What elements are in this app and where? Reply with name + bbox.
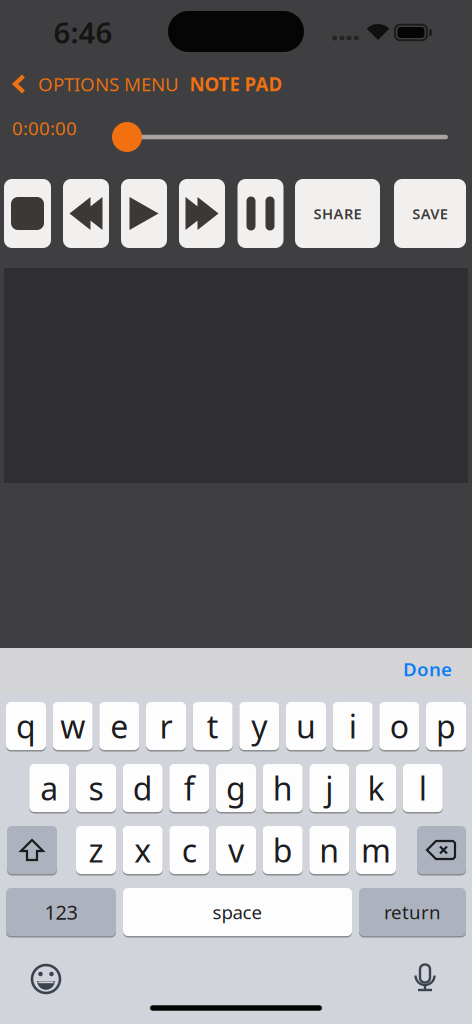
button[interactable]: n <box>309 825 349 875</box>
staticText: w <box>60 705 85 747</box>
staticText: x <box>134 829 151 871</box>
button[interactable]: q <box>6 701 46 751</box>
button[interactable]: b <box>263 825 303 875</box>
staticText: f <box>184 767 195 809</box>
button[interactable]: d <box>123 763 163 813</box>
staticText: u <box>296 705 316 747</box>
staticText: return <box>384 900 441 924</box>
button[interactable]: a <box>29 763 69 813</box>
staticText: l <box>419 767 427 809</box>
button[interactable]: space <box>123 887 352 937</box>
staticText: p <box>436 705 456 747</box>
button[interactable]: p <box>426 701 466 751</box>
staticText: q <box>16 705 36 747</box>
staticText: v <box>228 829 244 871</box>
button[interactable]: Done <box>392 647 462 691</box>
button[interactable]: m <box>356 825 396 875</box>
button[interactable]: g <box>216 763 256 813</box>
button[interactable]: Delete <box>417 825 466 875</box>
button[interactable]: z <box>76 825 116 875</box>
button[interactable]: Rewind <box>63 179 109 248</box>
button[interactable]: Dictation <box>413 962 437 991</box>
button[interactable]: r <box>146 701 186 751</box>
staticText: m <box>361 829 391 871</box>
button[interactable]: v <box>216 825 256 875</box>
button[interactable]: y <box>239 701 279 751</box>
button[interactable]: SAVE <box>394 179 466 248</box>
button[interactable]: x <box>123 825 163 875</box>
staticText: NOTE PAD <box>189 72 282 96</box>
button[interactable]: k <box>356 763 396 813</box>
staticText: SHARE <box>313 204 361 223</box>
button[interactable]: return <box>359 887 466 937</box>
staticText: c <box>182 829 197 871</box>
button[interactable]: Pause <box>237 179 283 248</box>
button[interactable]: 123 <box>6 887 116 937</box>
staticText: k <box>367 767 384 809</box>
staticText: SAVE <box>412 204 448 223</box>
staticText: Done <box>403 657 452 681</box>
staticText: n <box>319 829 339 871</box>
button[interactable]: Fast Forward <box>179 179 225 248</box>
staticText: s <box>88 767 103 809</box>
staticText: a <box>40 767 58 809</box>
button[interactable]: s <box>76 763 116 813</box>
button[interactable]: i <box>333 701 373 751</box>
staticText: o <box>390 705 409 747</box>
staticText: h <box>273 767 293 809</box>
staticText: y <box>251 705 267 747</box>
button[interactable]: h <box>263 763 303 813</box>
button[interactable]: j <box>309 763 349 813</box>
staticText: g <box>226 767 246 809</box>
staticText: r <box>159 705 172 747</box>
button[interactable]: o <box>379 701 419 751</box>
staticText: OPTIONS MENU <box>38 72 179 96</box>
staticText: 6:46 <box>53 12 112 51</box>
staticText: d <box>133 767 153 809</box>
staticText: e <box>110 705 128 747</box>
button[interactable]: Stop <box>4 179 51 248</box>
button[interactable]: u <box>286 701 326 751</box>
staticText: i <box>349 705 357 747</box>
staticText: j <box>325 767 333 809</box>
button[interactable]: Play <box>121 179 167 248</box>
button[interactable]: w <box>53 701 93 751</box>
button[interactable]: SHARE <box>295 179 380 248</box>
button[interactable]: f <box>169 763 209 813</box>
staticText: z <box>88 829 103 871</box>
button[interactable]: t <box>193 701 233 751</box>
staticText: 0:00:00 <box>12 116 77 140</box>
staticText: b <box>273 829 293 871</box>
staticText: t <box>207 705 219 747</box>
staticText: 123 <box>44 899 77 925</box>
button[interactable]: Shift <box>7 825 57 875</box>
button[interactable]: c <box>169 825 209 875</box>
button[interactable]: l <box>403 763 443 813</box>
staticText: space <box>212 900 262 924</box>
button[interactable]: e <box>99 701 139 751</box>
button[interactable]: Back <box>13 62 179 106</box>
button[interactable]: Emoji <box>30 963 62 995</box>
